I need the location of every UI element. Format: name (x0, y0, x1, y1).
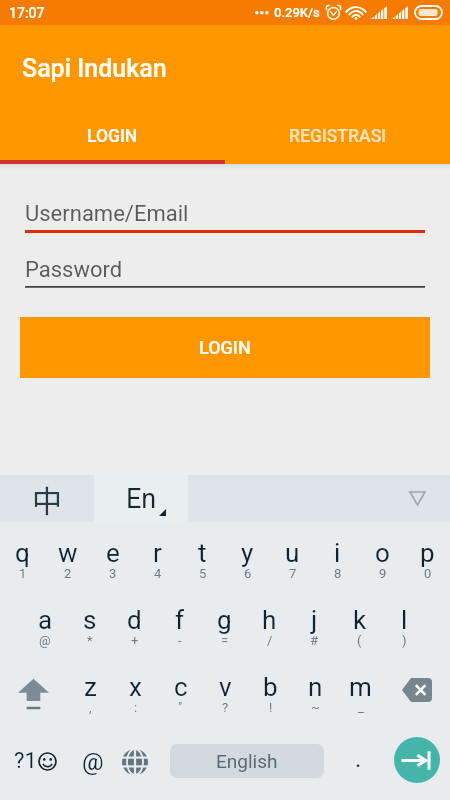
staticText: 3 (109, 566, 117, 581)
staticText: , (89, 700, 92, 715)
button[interactable]: . (338, 723, 378, 800)
button[interactable]: k (337, 589, 382, 656)
staticText: g (217, 605, 232, 635)
button[interactable]: p (405, 522, 450, 589)
button[interactable]: h (247, 589, 292, 656)
staticText: 2 (64, 566, 72, 581)
staticText: : (134, 700, 138, 715)
staticText: Sapi Indukan (22, 54, 167, 83)
staticText: 5 (199, 566, 207, 581)
button[interactable]: x (113, 656, 158, 723)
button[interactable]: t (180, 522, 225, 589)
staticText: = (221, 633, 229, 648)
staticText: ? (222, 700, 229, 715)
staticText: m (349, 672, 372, 702)
staticText: " (178, 700, 183, 715)
staticText: f (175, 605, 185, 635)
staticText: 7 (289, 566, 297, 581)
staticText: LOGIN (199, 337, 251, 358)
staticText: LOGIN (87, 126, 138, 147)
staticText: j (311, 605, 318, 635)
staticText: @ (82, 748, 104, 776)
button[interactable]: f (157, 589, 202, 656)
staticText: o (375, 538, 390, 568)
staticText: REGISTRASI (289, 126, 387, 147)
staticText: n (308, 672, 323, 702)
staticText: q (15, 538, 30, 568)
staticText: En (126, 483, 157, 515)
button[interactable]: z (67, 656, 113, 723)
staticText: ) (402, 633, 407, 648)
button[interactable]: Username/Email (25, 201, 425, 234)
staticText: l (401, 605, 408, 635)
button[interactable]: v (203, 656, 248, 723)
button[interactable]: Password (25, 257, 425, 290)
button[interactable]: q (0, 522, 45, 589)
button[interactable]: En (94, 475, 188, 522)
staticText: Username/Email (25, 201, 189, 227)
button[interactable]: i (315, 522, 360, 589)
staticText: h (262, 605, 277, 635)
button[interactable]: REGISTRASI (225, 107, 450, 164)
staticText: # (310, 633, 319, 648)
button[interactable]: y (225, 522, 270, 589)
staticText: 0.29K/s (274, 5, 320, 20)
staticText: 1 (19, 566, 27, 581)
button[interactable]: m (338, 656, 383, 723)
button[interactable]: u (270, 522, 315, 589)
button[interactable]: Enter (394, 737, 440, 783)
button[interactable]: Hide keyboard (188, 475, 450, 522)
button[interactable]: Backspace (383, 656, 450, 723)
staticText: z (84, 672, 97, 702)
staticText: . (355, 745, 362, 773)
staticText: s (83, 605, 97, 635)
button[interactable]: Shift (0, 656, 67, 723)
button[interactable]: w (45, 522, 90, 589)
staticText: ?1 (14, 748, 37, 774)
staticText: 4 (154, 566, 162, 581)
staticText: + (131, 633, 139, 648)
staticText: _ (358, 700, 364, 715)
staticText: b (263, 672, 278, 702)
button[interactable]: English (170, 744, 324, 778)
staticText: English (216, 750, 278, 772)
button[interactable]: Change language (114, 723, 156, 800)
button[interactable]: o (360, 522, 405, 589)
staticText: r (153, 538, 162, 568)
button[interactable]: b (248, 656, 293, 723)
staticText: @ (39, 633, 51, 648)
button[interactable]: 中 (0, 475, 94, 522)
button[interactable]: l (382, 589, 427, 656)
button[interactable]: @ (70, 723, 114, 800)
staticText: 中 (32, 477, 62, 520)
button[interactable]: Symbols and emoji (0, 723, 70, 800)
button[interactable]: d (112, 589, 157, 656)
staticText: t (198, 538, 207, 568)
staticText: y (241, 538, 254, 568)
staticText: e (106, 538, 120, 568)
staticText: v (219, 672, 232, 702)
button[interactable]: r (135, 522, 180, 589)
staticText: d (127, 605, 142, 635)
button[interactable]: c (158, 656, 203, 723)
button[interactable]: j (292, 589, 337, 656)
staticText: 17:07 (9, 5, 45, 21)
button[interactable]: s (67, 589, 112, 656)
button[interactable]: LOGIN (20, 317, 430, 378)
staticText: p (420, 538, 435, 568)
staticText: k (353, 605, 367, 635)
button[interactable]: e (90, 522, 135, 589)
staticText: Password (25, 257, 123, 283)
button[interactable]: n (293, 656, 338, 723)
button[interactable]: a (23, 589, 67, 656)
staticText: u (285, 538, 300, 568)
staticText: x (129, 672, 142, 702)
staticText: * (87, 633, 93, 648)
button[interactable]: LOGIN (0, 107, 225, 164)
button[interactable]: g (202, 589, 247, 656)
staticText: 6 (244, 566, 252, 581)
staticText: 9 (379, 566, 387, 581)
staticText: a (38, 605, 53, 635)
staticText: - (178, 633, 182, 648)
staticText: / (267, 633, 273, 648)
